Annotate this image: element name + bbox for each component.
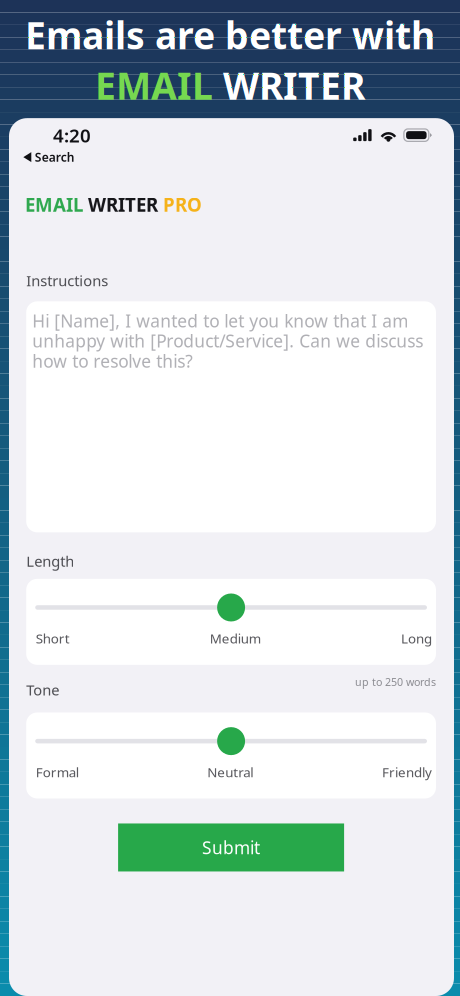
button[interactable]: Submit — [118, 823, 344, 871]
staticText: Length — [26, 551, 74, 571]
staticText: EMAIL — [95, 61, 213, 110]
staticText: Hi [Name], I wanted to let you know that… — [32, 309, 423, 372]
staticText: up to 250 words — [355, 675, 436, 689]
staticText: WRITER — [213, 61, 365, 110]
staticText: Submit — [202, 836, 260, 859]
staticText: WRITER — [83, 192, 158, 217]
button[interactable]: Search — [9, 146, 454, 168]
staticText: Emails are better with — [25, 10, 435, 60]
staticText: Neutral — [207, 763, 253, 781]
staticText: Friendly — [382, 763, 432, 781]
staticText: 4:20 — [53, 123, 91, 148]
staticText: PRO — [158, 192, 202, 217]
staticText: Long — [401, 629, 432, 647]
staticText: Short — [36, 629, 70, 647]
staticText: Medium — [210, 629, 261, 647]
staticText: EMAIL — [25, 192, 83, 217]
staticText: Formal — [36, 763, 79, 781]
staticText: Tone — [26, 680, 59, 699]
staticText: Instructions — [26, 271, 108, 290]
staticText: Search — [35, 149, 75, 165]
